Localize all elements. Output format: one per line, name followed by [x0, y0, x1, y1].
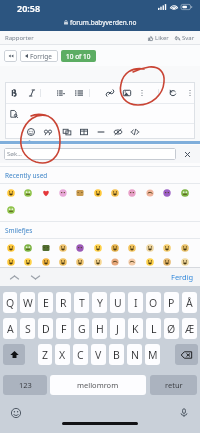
button[interactable]: Søk... [4, 148, 176, 160]
button[interactable]: Emoji [56, 186, 70, 200]
button[interactable]: Æ [182, 318, 197, 339]
button[interactable]: Ferdig [171, 272, 194, 282]
button[interactable]: 10 of 10 [61, 50, 96, 62]
button[interactable]: Horizontal rule [94, 125, 108, 139]
button[interactable]: Shift [3, 344, 25, 365]
button[interactable]: Emoji [73, 186, 87, 200]
button[interactable]: Emoji [178, 241, 192, 255]
button[interactable]: Emoji [108, 241, 122, 255]
button[interactable]: Emoji [24, 125, 38, 139]
button[interactable]: Q [3, 292, 17, 313]
button[interactable]: S [20, 318, 35, 339]
button[interactable]: Emoji [91, 186, 105, 200]
button[interactable]: Emoji [73, 256, 87, 267]
button[interactable]: Emoji [56, 256, 70, 267]
button[interactable]: Å [182, 292, 197, 313]
button[interactable]: Emoji [39, 241, 53, 255]
button[interactable]: Forrige [20, 50, 58, 62]
button[interactable]: Previous field [6, 269, 22, 285]
button[interactable]: Link [103, 86, 117, 100]
button[interactable]: Emoji [143, 256, 157, 267]
button[interactable]: I [128, 292, 143, 313]
button[interactable]: Table [77, 125, 91, 139]
button[interactable]: Emoji [4, 203, 18, 217]
button[interactable]: Media [60, 125, 74, 139]
button[interactable]: Next field [27, 269, 43, 285]
button[interactable]: Svar [175, 34, 195, 42]
button[interactable]: retur [150, 375, 197, 395]
button[interactable]: Emoji [160, 241, 174, 255]
button[interactable]: V [91, 344, 106, 365]
button[interactable]: Image [120, 86, 134, 100]
button[interactable]: G [74, 318, 89, 339]
staticText: Liker [155, 34, 169, 42]
button[interactable]: O [146, 292, 161, 313]
button[interactable]: Rapporter [5, 34, 34, 42]
button[interactable]: L [146, 318, 161, 339]
button[interactable]: Emoji [21, 186, 35, 200]
button[interactable]: Emoji [125, 256, 139, 267]
button[interactable]: First page [4, 50, 17, 62]
button[interactable]: Emoji keyboard [8, 405, 24, 421]
button[interactable]: Emoji [73, 241, 87, 255]
button[interactable]: Emoji [39, 186, 53, 200]
button[interactable]: Code [128, 125, 142, 139]
button[interactable]: Emoji [56, 241, 70, 255]
button[interactable]: Emoji [4, 256, 18, 267]
button[interactable]: W [20, 292, 35, 313]
button[interactable]: U [110, 292, 125, 313]
button[interactable]: P [164, 292, 179, 313]
button[interactable]: Liker [148, 34, 169, 42]
button[interactable]: mellomrom [50, 375, 146, 395]
button[interactable]: Emoji [4, 186, 18, 200]
button[interactable]: Emoji [21, 256, 35, 267]
button[interactable]: Emoji [91, 256, 105, 267]
button[interactable]: Emoji [143, 241, 157, 255]
button[interactable]: R [56, 292, 71, 313]
button[interactable]: Emoji [178, 186, 192, 200]
button[interactable]: Emoji [91, 241, 105, 255]
button[interactable]: E [38, 292, 53, 313]
button[interactable]: Spoiler [111, 125, 125, 139]
button[interactable]: M [145, 344, 160, 365]
button[interactable]: Emoji [178, 256, 192, 267]
button[interactable]: K [128, 318, 143, 339]
button[interactable]: Z [38, 344, 52, 365]
button[interactable]: List [72, 86, 86, 100]
button[interactable]: C [73, 344, 88, 365]
button[interactable]: T [74, 292, 89, 313]
button[interactable]: Undo [166, 86, 180, 100]
button[interactable]: A [3, 318, 17, 339]
button[interactable]: D [38, 318, 53, 339]
button[interactable]: Emoji [160, 186, 174, 200]
button[interactable]: Emoji [160, 256, 174, 267]
button[interactable]: Emoji [108, 256, 122, 267]
button[interactable]: X [55, 344, 70, 365]
button[interactable]: Backspace [175, 344, 198, 365]
button[interactable]: Emoji [143, 186, 157, 200]
button[interactable]: J [110, 318, 125, 339]
button[interactable]: Emoji [125, 186, 139, 200]
staticText: E [43, 296, 49, 310]
button[interactable]: Ø [164, 318, 179, 339]
button[interactable]: Emoji [21, 241, 35, 255]
button[interactable]: Preview [7, 107, 21, 121]
button[interactable]: Emoji [108, 186, 122, 200]
button[interactable]: Options [184, 86, 195, 100]
button[interactable]: Bold [7, 86, 21, 100]
button[interactable]: Dictation [176, 405, 192, 421]
button[interactable]: Emoji [125, 241, 139, 255]
button[interactable]: Close [181, 148, 193, 160]
button[interactable]: Italic [25, 86, 39, 100]
button[interactable]: Quote [41, 125, 55, 139]
button[interactable]: B [109, 344, 124, 365]
button[interactable]: H [92, 318, 107, 339]
button[interactable]: Paragraph [54, 86, 68, 100]
button[interactable]: Y [92, 292, 107, 313]
button[interactable]: More [135, 86, 149, 100]
button[interactable]: 123 [3, 375, 47, 395]
button[interactable]: Emoji [39, 256, 53, 267]
button[interactable]: F [56, 318, 71, 339]
button[interactable]: N [127, 344, 142, 365]
button[interactable]: Emoji [4, 241, 18, 255]
